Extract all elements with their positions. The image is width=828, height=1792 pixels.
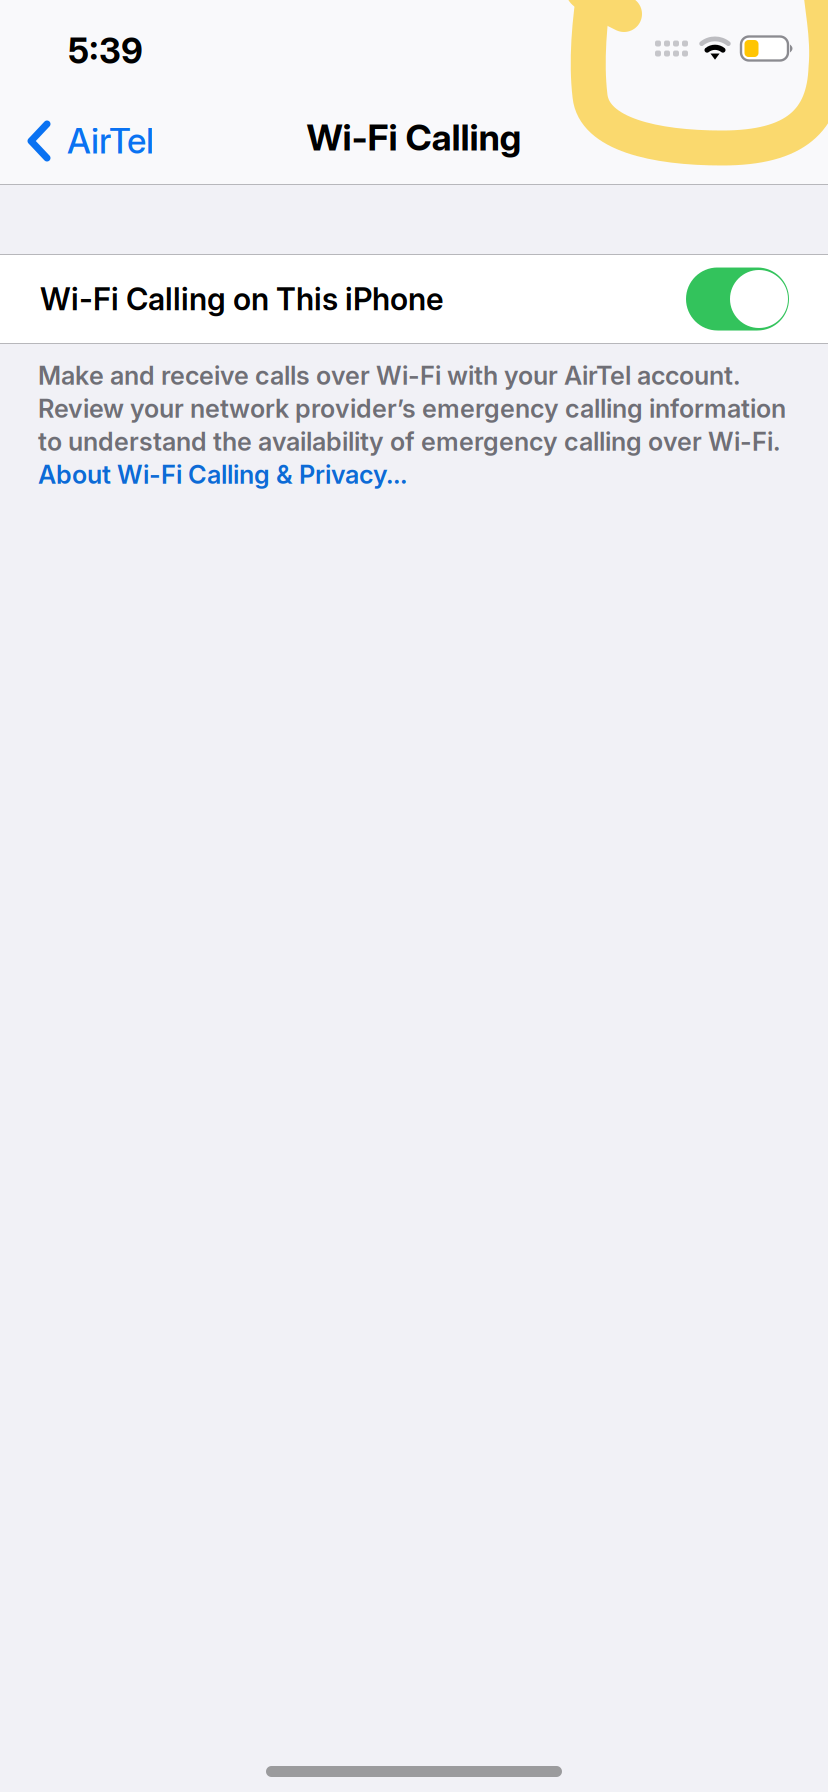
staticText: Wi-Fi Calling [306,116,521,159]
staticText: About Wi-Fi Calling & Privacy... [38,459,407,490]
button[interactable]: About Wi-Fi Calling & Privacy... [38,458,407,491]
staticText: Review your network provider’s emergency… [38,393,786,424]
staticText: Wi-Fi Calling on This iPhone [40,280,444,317]
button[interactable]: AirTel [0,97,172,185]
staticText: Make and receive calls over Wi-Fi with y… [38,360,740,391]
staticText: to understand the availability of emerge… [38,426,780,457]
button[interactable]: Wi-Fi Calling on This iPhone [0,254,828,344]
staticText: 5:39 [68,30,143,72]
staticText: AirTel [67,120,154,162]
